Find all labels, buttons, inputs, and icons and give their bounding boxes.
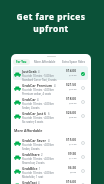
staticText: $24.00: [69, 87, 77, 90]
staticText: $14.00: [66, 69, 77, 73]
button[interactable]: GrabShare: [11, 151, 91, 165]
staticText: Standard Car or Taxi, 4 seats: [22, 78, 57, 82]
staticText: You ride 10 mins · 4.00 km: [22, 88, 54, 92]
staticText: GrabCar Just 6: [22, 111, 47, 116]
staticText: 4: [54, 84, 56, 88]
button[interactable]: Extra Space Rides: [60, 59, 88, 65]
staticText: More Affordable: [14, 128, 43, 133]
staticText: $17.00: [69, 142, 77, 145]
button[interactable]: More Affordable: [30, 59, 60, 65]
staticText: $16.00: [69, 73, 77, 76]
staticText: Shared car, 2 seats: [22, 161, 45, 165]
staticText: Get fare prices upfront: [0, 11, 103, 35]
staticText: GrabTaxi: [22, 180, 37, 184]
button[interactable]: GrabBike: [11, 165, 91, 179]
staticText: 4: [38, 70, 40, 74]
staticText: Premium sedan, 4 seats: [22, 92, 52, 96]
button[interactable]: GrabCar: [11, 96, 91, 110]
staticText: GrabCar: [22, 97, 36, 102]
staticText: $15.00: [66, 138, 77, 142]
staticText: JustGrab: [22, 69, 37, 74]
button[interactable]: GrabCar Premium: [11, 82, 91, 96]
staticText: GrabCar Saver: [22, 138, 47, 143]
staticText: GrabShare: [22, 152, 40, 157]
staticText: 4: [48, 139, 50, 143]
staticText: Six seater, 6 seats: [22, 120, 44, 124]
button[interactable]: GrabCar Saver: [11, 137, 91, 151]
staticText: 1: [39, 167, 41, 171]
staticText: Sedan, 4 seats: [22, 147, 40, 151]
staticText: $28.00: [69, 115, 77, 118]
button[interactable]: GrabTaxi: [11, 179, 91, 184]
staticText: $26.00: [66, 111, 77, 115]
staticText: $20.00: [69, 101, 77, 104]
staticText: $6.50: [68, 166, 77, 170]
staticText: You ride 10 mins · 4.00 km: [22, 116, 54, 120]
staticText: You ride 10 mins · 4.00 km: [22, 102, 54, 106]
staticText: You ride 10 mins · 4.00 km: [22, 157, 54, 161]
staticText: GrabBike: [22, 166, 38, 171]
staticText: You ride 10 mins · 4.00 km: [22, 143, 54, 147]
staticText: GrabCar Premium: [22, 83, 53, 88]
staticText: For You: [16, 60, 27, 64]
button[interactable]: JustGrab: [11, 68, 91, 82]
staticText: 4: [37, 98, 39, 102]
staticText: 6: [48, 112, 50, 116]
staticText: 2: [41, 153, 43, 157]
staticText: Motorbike, 1 seat: [22, 175, 44, 179]
button[interactable]: GrabCar Just 6: [11, 110, 91, 128]
staticText: $21.50: [66, 83, 77, 87]
staticText: You ride 10 mins · 4.00 km: [22, 171, 54, 175]
staticText: You ride 10 mins · 5.00 km: [22, 74, 54, 78]
other: Selected: [81, 72, 85, 76]
staticText: $9.50: [68, 152, 77, 156]
staticText: $16.00: [66, 180, 77, 184]
button[interactable]: For You: [13, 59, 30, 65]
staticText: $8.00: [70, 170, 77, 173]
staticText: $11.00: [69, 156, 77, 159]
staticText: 4: [38, 181, 40, 184]
staticText: Sedan, 4 seats: [22, 106, 40, 110]
staticText: Extra Space Rides: [62, 60, 86, 64]
staticText: $18.00: [66, 97, 77, 101]
staticText: More Affordable: [34, 60, 56, 64]
